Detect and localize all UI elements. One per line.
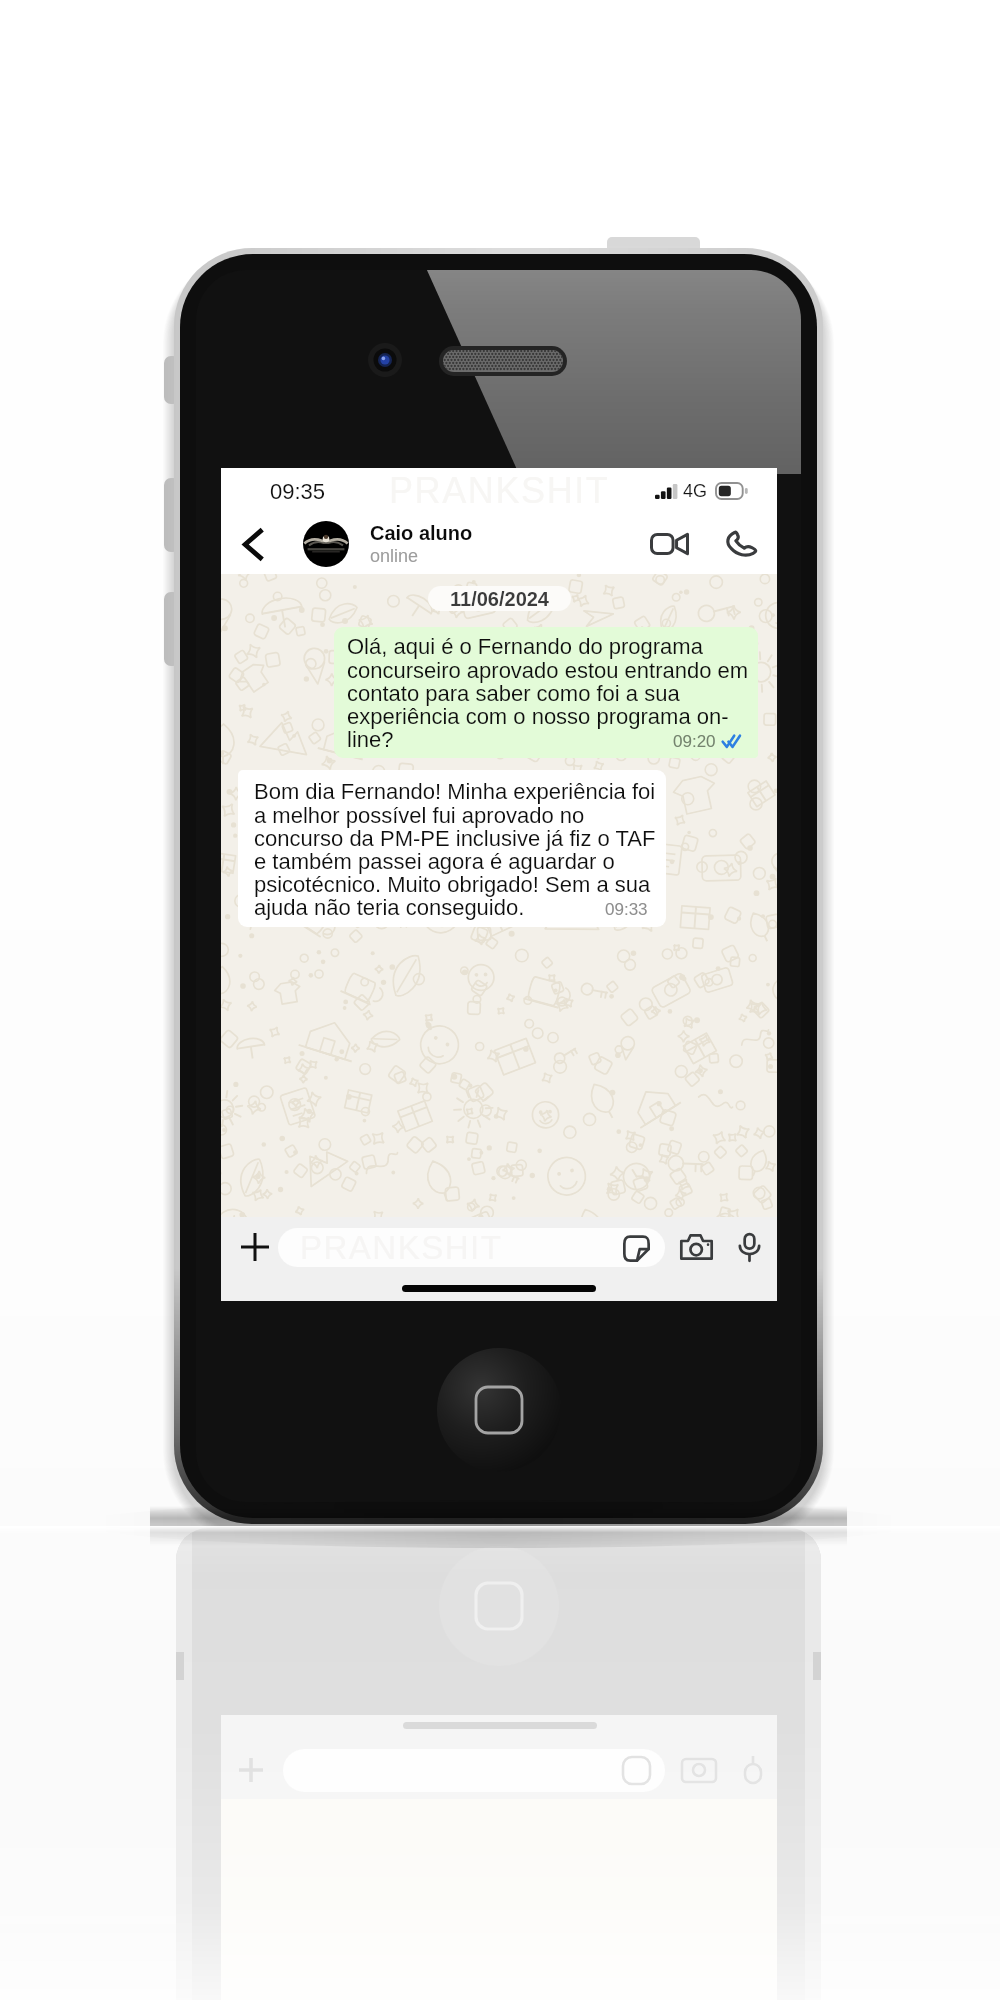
button[interactable]: Video call xyxy=(641,518,697,570)
staticText: 09:33 xyxy=(605,900,648,919)
button[interactable]: Attach xyxy=(232,1224,278,1270)
staticText: 4G xyxy=(683,481,708,501)
staticText: Caio aluno xyxy=(370,522,473,544)
button[interactable]: Olá, aqui é o Fernando do programa concu… xyxy=(334,627,758,758)
button[interactable]: 11/06/2024 xyxy=(428,586,571,611)
staticText: PRANKSHIT xyxy=(389,689,609,729)
button[interactable]: Voice message xyxy=(729,1227,769,1267)
staticText: online xyxy=(370,546,419,566)
staticText: 09:35 xyxy=(270,479,326,504)
staticText: 11/06/2024 xyxy=(450,588,549,610)
staticText: Bom dia Fernando! Minha experiência foi … xyxy=(254,779,658,919)
button[interactable]: Back xyxy=(233,524,273,564)
button[interactable]: Bom dia Fernando! Minha experiência foi … xyxy=(238,770,666,927)
staticText: Olá, aqui é o Fernando do programa concu… xyxy=(347,634,751,751)
button[interactable]: Camera xyxy=(675,1226,717,1268)
staticText: PRANKSHIT xyxy=(300,1229,503,1266)
button[interactable]: Voice call xyxy=(717,520,765,568)
staticText: 09:20 xyxy=(673,732,716,751)
button[interactable]: PRANKSHIT xyxy=(278,1228,665,1267)
staticText: PRANKSHIT xyxy=(389,470,610,510)
button[interactable]: Caio aluno xyxy=(303,514,641,574)
button[interactable]: Sticker xyxy=(621,1233,651,1263)
